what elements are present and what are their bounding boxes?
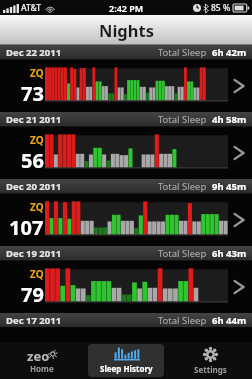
staticText: 4h 58m bbox=[212, 113, 247, 126]
staticText: 73 bbox=[21, 80, 44, 107]
staticText: 79 bbox=[21, 281, 44, 308]
staticText: 6h 44m bbox=[212, 314, 247, 327]
staticText: Home bbox=[30, 363, 54, 374]
staticText: Dec 21 2011 bbox=[6, 113, 62, 126]
staticText: 6h 42m bbox=[212, 46, 247, 59]
other: Open night details bbox=[232, 142, 246, 164]
staticText: Total Sleep bbox=[158, 247, 207, 260]
other: Open night details bbox=[232, 209, 246, 231]
button[interactable]: zeo bbox=[4, 344, 80, 377]
button[interactable]: Dec 21 2011 bbox=[0, 112, 252, 179]
staticText: Total Sleep bbox=[158, 314, 207, 327]
staticText: 2:42 PM bbox=[109, 2, 144, 14]
staticText: Sleep History bbox=[100, 363, 153, 374]
staticText: zeo bbox=[27, 347, 50, 361]
staticText: 6h 43m bbox=[212, 247, 247, 260]
staticText: Dec 22 2011 bbox=[6, 46, 62, 59]
staticText: Settings bbox=[194, 364, 227, 375]
other: Open night details bbox=[232, 276, 246, 298]
button[interactable]: Dec 17 2011 bbox=[0, 313, 252, 327]
staticText: Total Sleep bbox=[158, 113, 207, 126]
button[interactable]: Sleep History bbox=[88, 344, 164, 377]
staticText: ZQ bbox=[30, 200, 44, 214]
staticText: ZQ bbox=[30, 133, 44, 147]
staticText: Dec 17 2011 bbox=[6, 314, 62, 327]
staticText: Dec 20 2011 bbox=[6, 180, 62, 193]
button[interactable]: Settings bbox=[172, 344, 248, 377]
other: Open night details bbox=[232, 75, 246, 97]
staticText: ZQ bbox=[30, 66, 44, 80]
staticText: AT&T bbox=[21, 2, 42, 14]
button[interactable]: Dec 22 2011 bbox=[0, 45, 252, 112]
staticText: ZQ bbox=[30, 267, 44, 281]
staticText: Total Sleep bbox=[158, 46, 207, 59]
staticText: Dec 19 2011 bbox=[6, 247, 62, 260]
staticText: 56 bbox=[21, 147, 44, 174]
staticText: Nights bbox=[99, 19, 154, 41]
staticText: Total Sleep bbox=[158, 180, 207, 193]
staticText: 85 % bbox=[211, 2, 231, 14]
staticText: 9h 45m bbox=[212, 180, 247, 193]
staticText: 107 bbox=[9, 214, 44, 241]
button[interactable]: Dec 19 2011 bbox=[0, 246, 252, 313]
button[interactable]: Dec 20 2011 bbox=[0, 179, 252, 246]
